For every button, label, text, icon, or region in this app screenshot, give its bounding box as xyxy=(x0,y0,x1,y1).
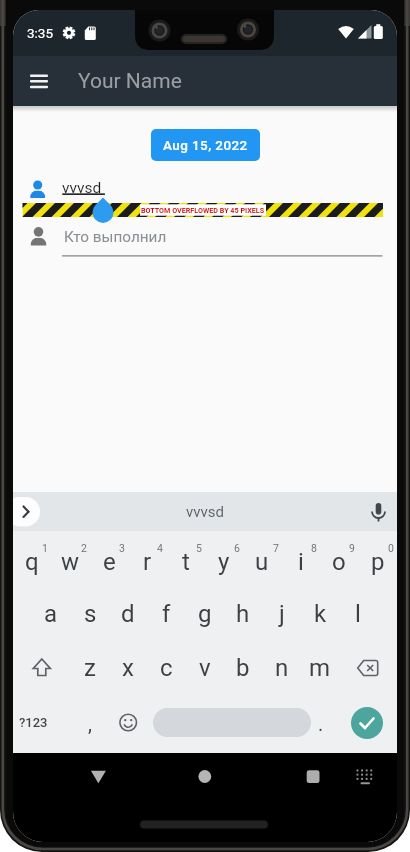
button[interactable] xyxy=(68,755,128,797)
staticText: 3 xyxy=(119,542,125,554)
button[interactable] xyxy=(175,755,235,797)
staticText: x xyxy=(122,654,134,682)
button[interactable]: ?123 xyxy=(13,697,53,747)
button[interactable]: t xyxy=(167,537,205,587)
staticText: y xyxy=(218,548,230,576)
button[interactable]: n xyxy=(263,643,301,693)
staticText: k xyxy=(314,600,327,628)
staticText: h xyxy=(236,600,250,628)
staticText: g xyxy=(198,600,212,628)
button[interactable]: b xyxy=(224,643,262,693)
button[interactable]: c xyxy=(147,643,185,693)
staticText: f xyxy=(162,600,171,628)
button[interactable] xyxy=(365,499,392,525)
button[interactable]: m xyxy=(301,643,339,693)
staticText: 0 xyxy=(388,542,394,554)
staticText: 3:35 xyxy=(27,25,54,41)
button[interactable] xyxy=(351,707,383,739)
button[interactable]: a xyxy=(32,589,70,639)
button[interactable]: o xyxy=(320,537,358,587)
button[interactable]: k xyxy=(301,589,339,639)
button[interactable]: s xyxy=(71,589,109,639)
staticText: n xyxy=(275,654,289,682)
staticText: o xyxy=(332,548,346,576)
staticText: p xyxy=(371,548,385,576)
staticText: ?123 xyxy=(19,715,48,730)
staticText: Кто выполнил xyxy=(64,228,167,246)
button[interactable] xyxy=(348,758,384,794)
staticText: vvvsd xyxy=(186,503,224,521)
staticText: t xyxy=(182,548,190,576)
staticText: q xyxy=(25,548,39,576)
button[interactable] xyxy=(153,708,311,737)
staticText: i xyxy=(298,548,304,576)
button[interactable] xyxy=(22,222,383,258)
staticText: Your Name xyxy=(78,69,182,94)
staticText: 2 xyxy=(81,542,87,554)
staticText: v xyxy=(199,654,211,682)
staticText: 8 xyxy=(311,542,317,554)
staticText: s xyxy=(84,600,97,628)
button[interactable]: e xyxy=(90,537,128,587)
button[interactable]: d xyxy=(109,589,147,639)
staticText: 1 xyxy=(42,542,48,554)
button[interactable]: w xyxy=(51,537,89,587)
button[interactable]: Aug 15, 2022 xyxy=(151,129,260,161)
staticText: 5 xyxy=(196,542,202,554)
button[interactable]: f xyxy=(147,589,185,639)
button[interactable]: r xyxy=(128,537,166,587)
staticText: m xyxy=(309,654,331,682)
staticText: r xyxy=(143,548,152,576)
staticText: 4 xyxy=(157,542,163,554)
staticText: 6 xyxy=(234,542,240,554)
staticText: e xyxy=(103,548,116,576)
button[interactable]: q xyxy=(13,537,51,587)
button[interactable]: y xyxy=(205,537,243,587)
staticText: vvvsd xyxy=(62,179,102,197)
button[interactable]: v xyxy=(186,643,224,693)
button[interactable]: p xyxy=(359,537,397,587)
button[interactable]: i xyxy=(282,537,320,587)
staticText: 9 xyxy=(349,542,355,554)
button[interactable]: x xyxy=(109,643,147,693)
button[interactable] xyxy=(340,643,397,693)
button[interactable] xyxy=(22,175,383,203)
button[interactable] xyxy=(111,697,145,747)
button[interactable]: g xyxy=(186,589,224,639)
staticText: j xyxy=(279,600,285,628)
button[interactable]: j xyxy=(263,589,301,639)
button[interactable]: u xyxy=(243,537,281,587)
staticText: a xyxy=(44,600,58,628)
staticText: l xyxy=(355,600,361,628)
staticText: d xyxy=(121,600,135,628)
staticText: u xyxy=(255,548,269,576)
staticText: c xyxy=(160,654,173,682)
staticText: z xyxy=(84,654,96,682)
staticText: 7 xyxy=(273,542,279,554)
button[interactable]: l xyxy=(339,589,377,639)
button[interactable] xyxy=(283,755,343,797)
staticText: , xyxy=(88,712,92,734)
button[interactable]: h xyxy=(224,589,262,639)
staticText: w xyxy=(61,548,80,576)
button[interactable] xyxy=(13,497,40,527)
button[interactable]: z xyxy=(71,643,109,693)
staticText: b xyxy=(236,654,250,682)
staticText: . xyxy=(318,712,324,734)
button[interactable] xyxy=(13,643,70,693)
staticText: BOTTOM OVERFLOWED BY 45 PIXELS xyxy=(141,206,265,214)
staticText: Aug 15, 2022 xyxy=(163,137,248,153)
